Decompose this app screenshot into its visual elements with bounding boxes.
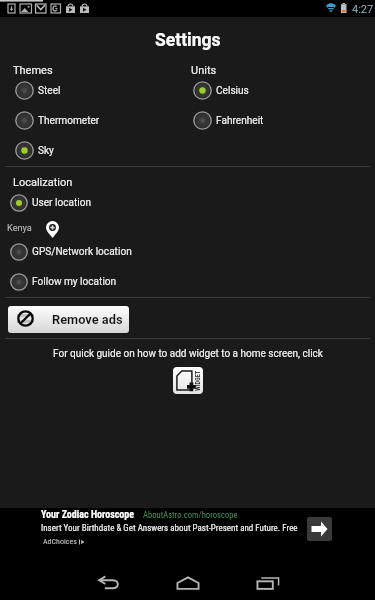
staticText: Follow my location — [32, 276, 117, 288]
staticText: Units — [191, 64, 217, 77]
button[interactable]: GPS/Network location — [10, 239, 132, 265]
staticText: Thermometer — [38, 115, 100, 127]
staticText: GPS/Network location — [32, 246, 132, 258]
button[interactable]: Celsius — [193, 77, 249, 104]
staticText: 4:27 — [352, 3, 374, 16]
staticText: Kenya — [7, 222, 32, 233]
staticText: Themes — [13, 64, 53, 77]
staticText: AdChoices — [43, 537, 77, 546]
button[interactable]: User location — [10, 190, 92, 216]
button[interactable]: Remove ads — [8, 306, 129, 333]
staticText: AboutAstro.com/horoscope — [143, 510, 238, 520]
staticText: Remove ads — [52, 312, 123, 327]
button[interactable]: Back — [82, 565, 134, 600]
button[interactable]: Sky — [15, 137, 54, 164]
staticText: Your Zodiac Horoscope — [41, 509, 134, 521]
button[interactable]: Open advertisement — [307, 517, 332, 541]
staticText: Fahrenheit — [216, 115, 264, 127]
staticText: Insert Your Birthdate & Get Answers abou… — [41, 523, 298, 534]
button[interactable]: Recents — [242, 565, 294, 600]
button[interactable]: Home — [162, 565, 214, 600]
button[interactable]: Pick location — [46, 221, 59, 238]
staticText: Sky — [38, 145, 54, 157]
button[interactable]: Fahrenheit — [193, 107, 264, 134]
staticText: Settings — [155, 30, 221, 51]
staticText: For quick guide on how to add widget to … — [53, 348, 323, 360]
button[interactable]: Steel — [15, 77, 61, 104]
button[interactable]: Thermometer — [15, 107, 100, 134]
staticText: Celsius — [216, 85, 249, 97]
staticText: User location — [32, 197, 92, 209]
button[interactable]: Add widget guide — [173, 367, 203, 394]
staticText: Localization — [13, 176, 73, 189]
staticText: Steel — [38, 85, 61, 97]
button[interactable]: Follow my location — [10, 269, 117, 295]
